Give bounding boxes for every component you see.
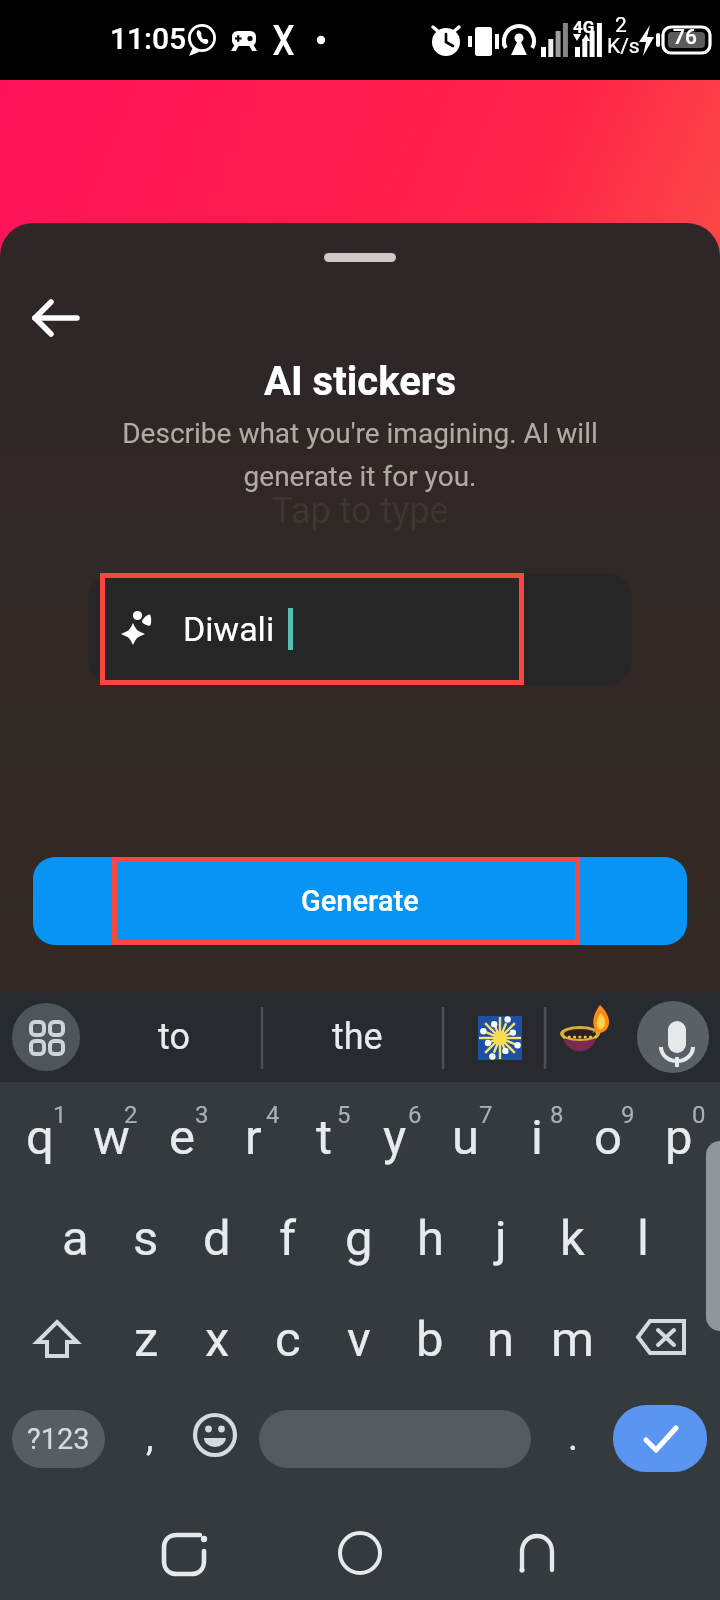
button[interactable]: g [324, 1188, 394, 1288]
button[interactable]: p [644, 1087, 714, 1187]
staticText: Diwali [183, 609, 275, 649]
staticText: x [205, 1311, 230, 1368]
staticText: z [134, 1311, 159, 1368]
button[interactable]: l [608, 1188, 678, 1288]
staticText: 8 [550, 1101, 564, 1129]
button[interactable]: k [537, 1188, 607, 1288]
staticText: 3 [195, 1101, 209, 1129]
staticText: Describe what you're imagining. AI will … [0, 417, 720, 493]
button[interactable]: q [5, 1087, 75, 1187]
staticText: 4G [573, 17, 595, 37]
staticText: ?123 [27, 1422, 90, 1456]
button[interactable]: Generate [33, 857, 687, 945]
staticText: o [594, 1109, 622, 1166]
staticText: Generate [301, 884, 419, 918]
staticText: 7 [479, 1101, 493, 1129]
staticText: g [345, 1210, 373, 1267]
staticText: 76 [673, 25, 697, 50]
button[interactable]: Diwali [88, 573, 632, 685]
staticText: the [332, 1016, 383, 1058]
staticText: l [637, 1210, 649, 1267]
staticText: 2 [124, 1101, 138, 1129]
button[interactable]: y [360, 1087, 430, 1187]
button[interactable]: t [289, 1087, 359, 1187]
button[interactable]: m [537, 1289, 607, 1389]
staticText: k [560, 1210, 585, 1267]
staticText: s [133, 1210, 159, 1267]
staticText: m [551, 1311, 594, 1368]
button[interactable]: e [147, 1087, 217, 1187]
button[interactable]: Home [320, 1513, 400, 1593]
staticText: j [495, 1210, 507, 1267]
staticText: f [279, 1210, 297, 1267]
staticText: t [316, 1109, 333, 1166]
button[interactable]: d [182, 1188, 252, 1288]
button[interactable]: Shift [20, 1288, 94, 1388]
button[interactable]: , [120, 1405, 180, 1469]
button[interactable]: h [395, 1188, 465, 1288]
staticText: y [383, 1109, 407, 1166]
button[interactable]: Voice input [637, 1001, 709, 1073]
staticText: i [531, 1109, 543, 1166]
button[interactable]: Emoji [186, 1406, 244, 1464]
button[interactable]: n [466, 1289, 536, 1389]
button[interactable]: o [573, 1087, 643, 1187]
staticText: a [62, 1210, 89, 1267]
button[interactable]: x [182, 1289, 252, 1389]
staticText: u [452, 1109, 480, 1166]
staticText: w [93, 1109, 130, 1166]
button[interactable]: r [218, 1087, 288, 1187]
staticText: d [203, 1210, 231, 1267]
staticText: to [158, 1016, 190, 1058]
button[interactable]: j [466, 1188, 536, 1288]
staticText: K/s [607, 34, 640, 59]
button[interactable]: the [283, 997, 431, 1077]
staticText: p [665, 1109, 693, 1166]
staticText: c [275, 1311, 301, 1368]
button[interactable]: a [40, 1188, 110, 1288]
staticText: Tap to type [0, 490, 720, 532]
button[interactable]: s [111, 1188, 181, 1288]
button[interactable]: u [431, 1087, 501, 1187]
staticText: 6 [408, 1101, 422, 1129]
button[interactable]: Space [259, 1410, 531, 1468]
button[interactable]: i [502, 1087, 572, 1187]
button[interactable]: ?123 [12, 1410, 105, 1468]
staticText: b [416, 1311, 444, 1368]
staticText: r [245, 1109, 262, 1166]
staticText: , [146, 1415, 154, 1460]
button[interactable]: Back [144, 1513, 224, 1593]
button[interactable]: to [100, 997, 248, 1077]
button[interactable]: b [395, 1289, 465, 1389]
button[interactable]: Keyboard menu [12, 1003, 80, 1071]
staticText: h [417, 1210, 444, 1267]
staticText: 2 [615, 13, 627, 38]
button[interactable]: v [324, 1289, 394, 1389]
staticText: 4 [266, 1101, 280, 1129]
button[interactable]: Backspace [624, 1288, 698, 1388]
button[interactable]: c [253, 1289, 323, 1389]
staticText: AI stickers [0, 358, 720, 405]
button[interactable]: f [253, 1188, 323, 1288]
staticText: 9 [621, 1101, 635, 1129]
staticText: q [26, 1109, 54, 1166]
staticText: 0 [692, 1101, 706, 1129]
staticText: . [568, 1415, 579, 1460]
button[interactable]: Done [613, 1405, 707, 1472]
button[interactable]: z [111, 1289, 181, 1389]
staticText: v [347, 1311, 371, 1368]
button[interactable]: Recents [497, 1513, 577, 1593]
staticText: n [487, 1311, 515, 1368]
staticText: 5 [337, 1101, 351, 1129]
staticText: 1 [53, 1101, 67, 1129]
button[interactable]: Back [20, 283, 90, 353]
button[interactable]: . [545, 1405, 601, 1469]
staticText: e [169, 1109, 195, 1166]
staticText: 11:05 [110, 21, 187, 56]
button[interactable]: w [76, 1087, 146, 1187]
